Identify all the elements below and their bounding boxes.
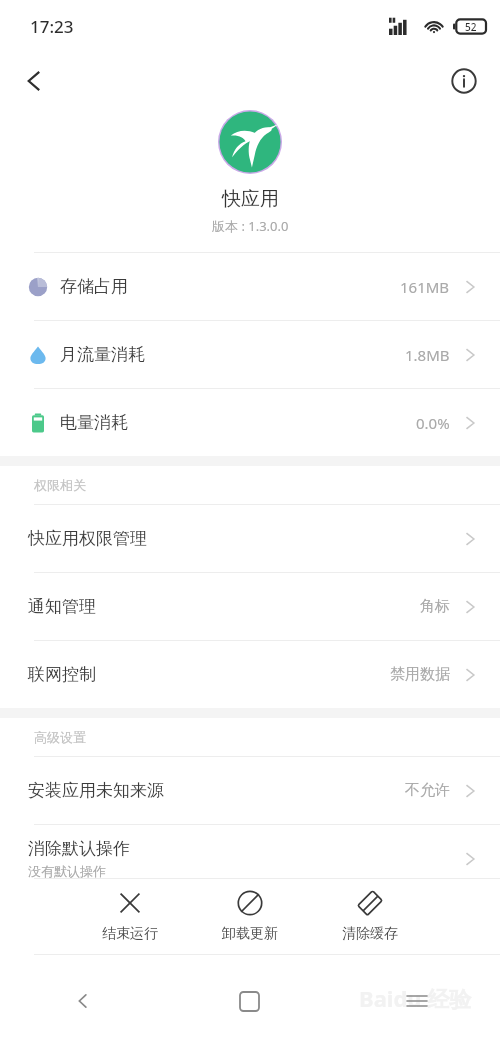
staticText: 角标 [420, 597, 450, 616]
staticText: 高级设置 [34, 729, 86, 745]
staticText: 快应用 [222, 187, 279, 211]
staticText: 结束运行 [102, 925, 158, 943]
staticText: 没有默认操作 [28, 863, 106, 879]
staticText: 禁用数据 [390, 665, 450, 684]
staticText: 版本 : 1.3.0.0 [212, 217, 289, 235]
button[interactable]: 通知管理 [0, 573, 500, 640]
staticText: 通知管理 [28, 596, 96, 617]
button[interactable]: 清除缓存 [327, 886, 413, 947]
staticText: 0.0% [416, 413, 450, 433]
staticText: 161MB [400, 277, 450, 297]
staticText: 快应用权限管理 [28, 528, 147, 549]
staticText: 清除缓存 [342, 925, 398, 943]
button[interactable]: Back [10, 57, 58, 105]
button[interactable]: 月流量消耗 [0, 321, 500, 388]
staticText: Baidu 经验 [359, 983, 472, 1013]
button[interactable]: 快应用权限管理 [0, 505, 500, 572]
staticText: 电量消耗 [60, 412, 128, 433]
button[interactable]: Recent apps [333, 961, 500, 1041]
staticText: 消除默认操作 [28, 838, 130, 859]
button[interactable]: 卸载更新 [207, 886, 293, 947]
button[interactable]: 联网控制 [0, 641, 500, 708]
staticText: 不允许 [405, 781, 450, 800]
staticText: 1.8MB [405, 345, 450, 365]
staticText: 月流量消耗 [60, 344, 145, 365]
staticText: 卸载更新 [222, 925, 278, 943]
button[interactable]: Back [0, 961, 166, 1041]
button[interactable]: App info [442, 59, 486, 103]
staticText: 安装应用未知来源 [28, 780, 164, 801]
staticText: 存储占用 [60, 276, 128, 297]
button[interactable]: Home [166, 961, 333, 1041]
button[interactable]: 结束运行 [87, 886, 173, 947]
button[interactable]: 存储占用 [0, 253, 500, 320]
button[interactable]: 消除默认操作 [0, 825, 500, 892]
staticText: 52 [465, 20, 477, 34]
staticText: 17:23 [30, 15, 74, 38]
staticText: 权限相关 [34, 477, 86, 493]
button[interactable]: 电量消耗 [0, 389, 500, 456]
staticText: 联网控制 [28, 664, 96, 685]
button[interactable]: 安装应用未知来源 [0, 757, 500, 824]
